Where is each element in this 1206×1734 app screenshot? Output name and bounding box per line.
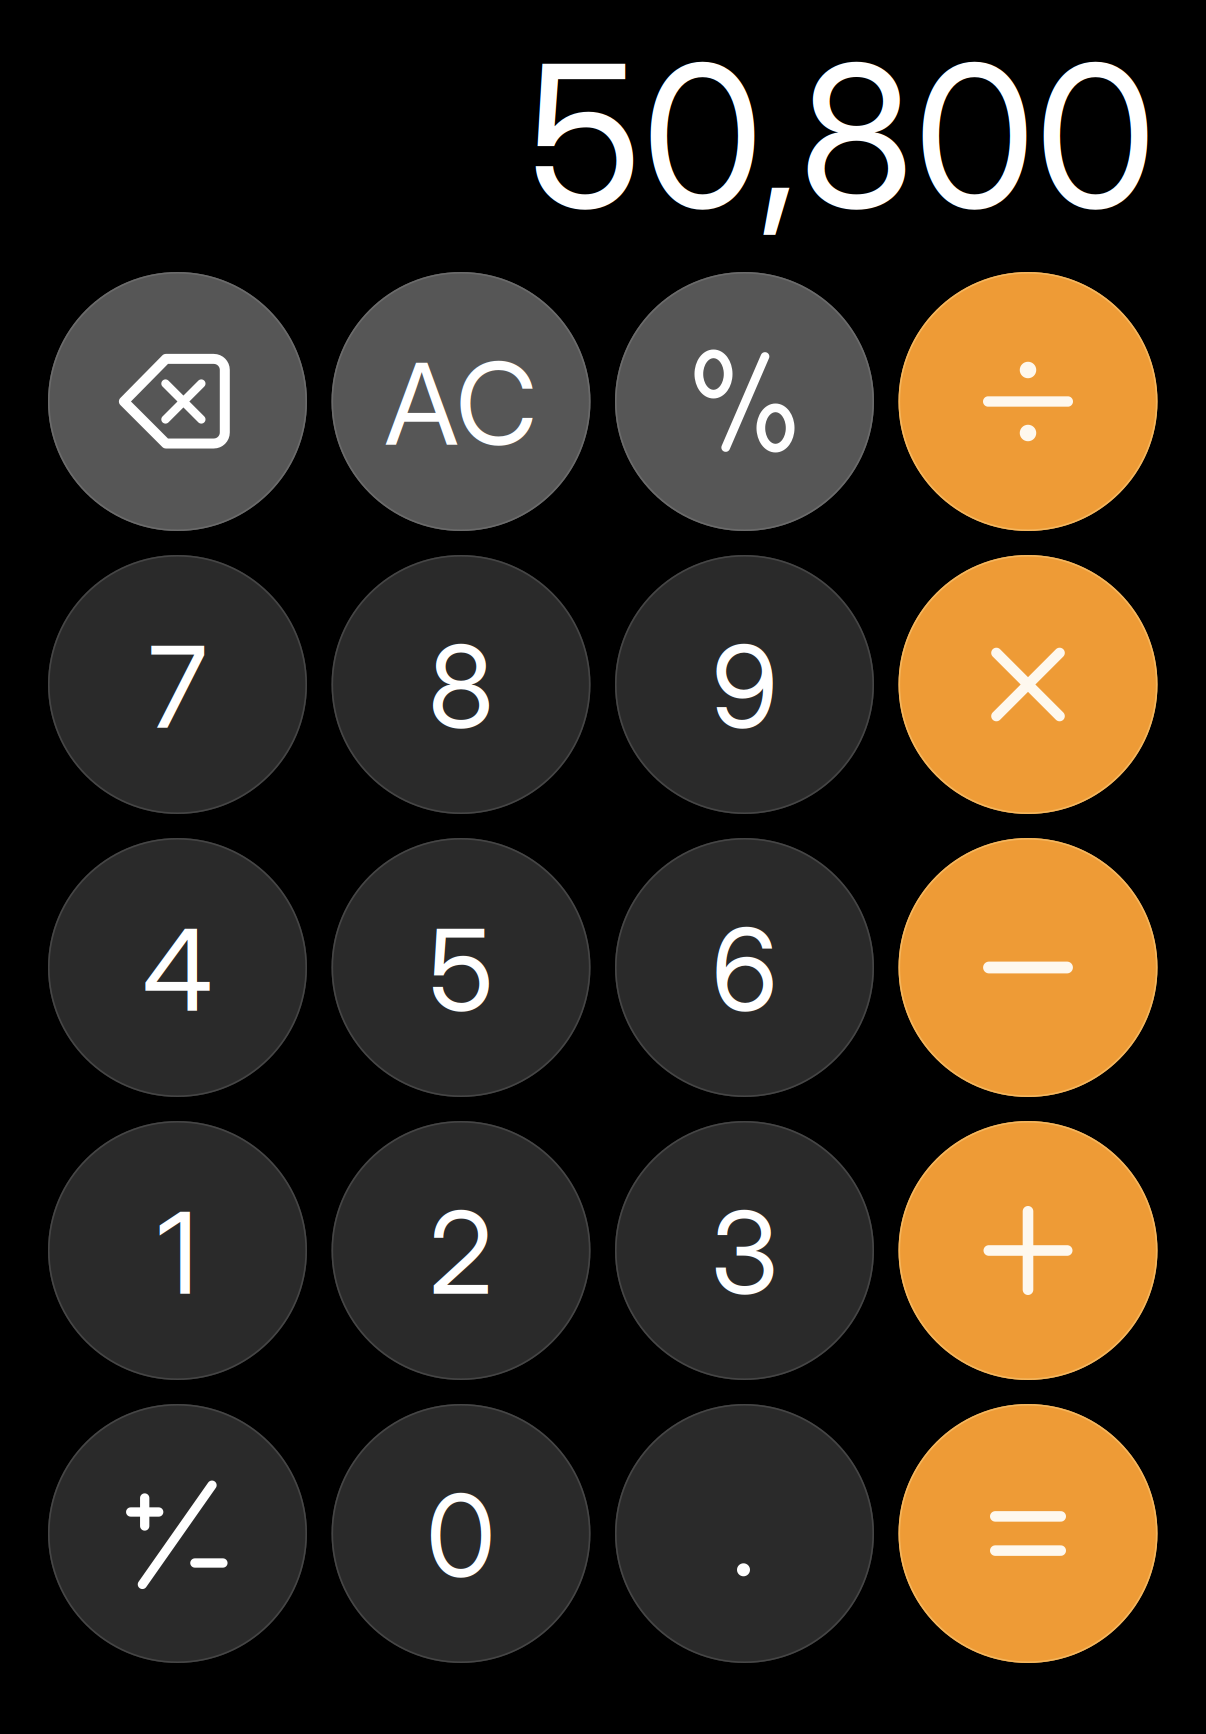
button[interactable]: Add (898, 1121, 1157, 1380)
button[interactable]: Percent (615, 272, 874, 531)
button[interactable]: AC (331, 272, 590, 531)
button[interactable]: Plus minus (48, 1404, 307, 1663)
button[interactable]: Subtract (898, 838, 1157, 1097)
staticText: 4 (142, 901, 212, 1038)
button[interactable]: 0 (331, 1404, 590, 1663)
button[interactable]: Delete (48, 272, 307, 531)
staticText: 3 (710, 1184, 778, 1321)
staticText: 6 (711, 901, 777, 1038)
staticText: 0 (426, 1467, 496, 1604)
button[interactable]: 6 (615, 838, 874, 1097)
staticText: 2 (429, 1184, 493, 1321)
button[interactable]: Multiply (898, 555, 1157, 814)
staticText: 50,800 (528, 17, 1156, 255)
button[interactable]: 7 (48, 555, 307, 814)
button[interactable]: 1 (48, 1121, 307, 1380)
button[interactable]: 8 (331, 555, 590, 814)
button[interactable]: 2 (331, 1121, 590, 1380)
staticText: AC (384, 335, 537, 472)
button[interactable]: 9 (615, 555, 874, 814)
button[interactable]: 5 (331, 838, 590, 1097)
button[interactable]: Divide (898, 272, 1157, 531)
staticText: 7 (148, 618, 206, 755)
button[interactable]: 4 (48, 838, 307, 1097)
button[interactable]: Decimal point (615, 1404, 874, 1663)
staticText: 5 (428, 901, 493, 1038)
staticText: 9 (711, 618, 777, 755)
staticText: 1 (157, 1184, 198, 1321)
button[interactable]: 3 (615, 1121, 874, 1380)
button[interactable]: Equals (898, 1404, 1157, 1663)
staticText: 8 (428, 618, 494, 755)
